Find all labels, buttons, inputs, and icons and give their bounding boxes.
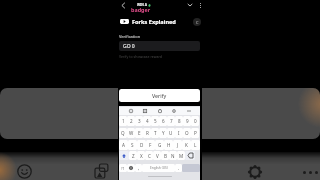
button[interactable]: More options xyxy=(300,162,320,180)
staticText: Verify to showcase reward xyxy=(119,54,162,59)
staticText: T xyxy=(154,130,157,136)
button[interactable]: Account xyxy=(193,18,201,26)
staticText: Verification xyxy=(119,34,141,39)
staticText: P xyxy=(194,130,197,136)
button[interactable]: O xyxy=(183,128,191,138)
button[interactable]: Keyboard tool xyxy=(171,108,177,114)
button[interactable]: 3 xyxy=(135,116,143,126)
staticText: R xyxy=(146,130,149,136)
button[interactable]: Q xyxy=(119,128,127,138)
button[interactable]: X xyxy=(137,151,145,160)
button[interactable]: L xyxy=(191,140,200,150)
staticText: 4 xyxy=(146,118,149,124)
staticText: W xyxy=(129,130,134,136)
staticText: U xyxy=(169,130,173,136)
button[interactable]: V xyxy=(153,151,161,160)
staticText: Z xyxy=(132,153,135,159)
button[interactable]: More options xyxy=(196,1,204,9)
staticText: O xyxy=(185,130,189,136)
staticText: ?1 xyxy=(121,166,125,170)
button[interactable]: Backspace xyxy=(185,151,195,160)
button[interactable]: A xyxy=(119,140,128,150)
staticText: GO 0 xyxy=(123,43,135,50)
button[interactable]: Verify xyxy=(119,89,200,102)
staticText: Q xyxy=(121,130,125,136)
button[interactable]: Change keyboard xyxy=(127,164,135,172)
staticText: 5 xyxy=(154,118,157,124)
button[interactable]: K xyxy=(182,140,191,150)
button[interactable]: M xyxy=(177,151,185,160)
button[interactable]: Keyboard tool xyxy=(142,108,148,114)
button[interactable]: H xyxy=(164,140,173,150)
button[interactable]: F xyxy=(146,140,155,150)
button[interactable]: 9 xyxy=(183,116,191,126)
button[interactable]: Shift xyxy=(119,151,129,160)
button[interactable]: Keyboard tool xyxy=(186,108,192,114)
button[interactable]: J xyxy=(173,140,182,150)
button[interactable]: Z xyxy=(129,151,137,160)
staticText: X xyxy=(140,153,143,159)
staticText: 3 xyxy=(138,118,141,124)
staticText: 7 xyxy=(170,118,173,124)
staticText: 6 xyxy=(162,118,165,124)
staticText: B xyxy=(164,153,167,159)
button[interactable]: 4 xyxy=(143,116,151,126)
staticText: C xyxy=(196,20,199,25)
button[interactable]: D xyxy=(137,140,146,150)
button[interactable]: C xyxy=(145,151,153,160)
staticText: H xyxy=(167,142,171,148)
button[interactable]: , xyxy=(135,164,142,172)
staticText: WIN A xyxy=(137,3,147,7)
button[interactable]: Back xyxy=(119,1,127,9)
button[interactable]: GO 0 xyxy=(119,41,200,51)
button[interactable]: . xyxy=(175,164,182,172)
staticText: E xyxy=(138,130,141,136)
staticText: J xyxy=(177,142,179,148)
staticText: 1 xyxy=(122,118,125,124)
button[interactable]: 7 xyxy=(167,116,175,126)
staticText: A xyxy=(122,142,125,148)
staticText: Verify xyxy=(152,92,167,99)
button[interactable]: 5 xyxy=(151,116,159,126)
staticText: 8 xyxy=(178,118,181,124)
button[interactable]: B xyxy=(161,151,169,160)
staticText: C xyxy=(148,153,151,159)
staticText: Y xyxy=(162,130,165,136)
staticText: M xyxy=(179,153,184,159)
button[interactable]: R xyxy=(143,128,151,138)
staticText: S xyxy=(131,142,134,148)
button[interactable]: Keyboard tool xyxy=(157,108,163,114)
button[interactable]: W xyxy=(127,128,135,138)
staticText: G xyxy=(158,142,162,148)
button[interactable]: 0 xyxy=(191,116,199,126)
button[interactable]: Settings xyxy=(244,161,265,180)
button[interactable]: T xyxy=(151,128,159,138)
button[interactable]: English (US) xyxy=(142,164,175,172)
button[interactable]: Collapse xyxy=(186,1,194,9)
staticText: , xyxy=(138,165,140,171)
button[interactable]: U xyxy=(167,128,175,138)
button[interactable]: 6 xyxy=(159,116,167,126)
staticText: K xyxy=(185,142,188,148)
button[interactable]: Emoji xyxy=(14,161,35,180)
staticText: 0 xyxy=(194,118,197,124)
staticText: 9 xyxy=(186,118,189,124)
staticText: . xyxy=(178,165,180,171)
button[interactable]: S xyxy=(128,140,137,150)
button[interactable]: 1 xyxy=(119,116,127,126)
button[interactable]: Switch layout xyxy=(91,160,112,180)
staticText: I xyxy=(178,130,180,136)
button[interactable]: P xyxy=(191,128,199,138)
button[interactable]: Keyboard tool xyxy=(128,108,134,114)
button[interactable]: 2 xyxy=(127,116,135,126)
button[interactable]: I xyxy=(175,128,183,138)
button[interactable]: ?1 xyxy=(119,164,127,172)
staticText: L xyxy=(194,142,197,148)
button[interactable]: G xyxy=(155,140,164,150)
button[interactable]: N xyxy=(169,151,177,160)
button[interactable]: 8 xyxy=(175,116,183,126)
button[interactable]: Y xyxy=(159,128,167,138)
staticText: Forks Explained xyxy=(132,18,176,26)
button[interactable]: E xyxy=(135,128,143,138)
